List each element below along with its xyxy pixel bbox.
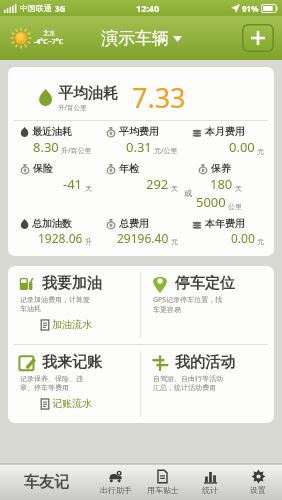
staticText: 91% xyxy=(242,3,259,14)
staticText: 演示车辆 xyxy=(101,28,169,49)
button[interactable]: 记账流水 xyxy=(40,397,92,410)
staticText: 停车定位 xyxy=(175,274,235,293)
staticText: 29196.40 xyxy=(117,230,169,246)
staticText: 我要加油 xyxy=(42,274,102,293)
button[interactable]: 出行助手 xyxy=(92,464,139,500)
staticText: 总费用 xyxy=(119,217,149,230)
staticText: -41 xyxy=(63,175,83,193)
staticText: 元 xyxy=(257,147,264,156)
staticText: 总加油数 xyxy=(32,217,72,230)
staticText: 12:40 xyxy=(136,2,160,14)
staticText: 加油流水 xyxy=(52,318,92,331)
staticText: 3G xyxy=(55,3,66,14)
staticText: 0.00 xyxy=(229,138,255,156)
staticText: 本年费用 xyxy=(205,217,245,230)
staticText: 天 xyxy=(85,184,92,193)
button[interactable]: 加油流水 xyxy=(40,318,92,331)
staticText: 保险 xyxy=(33,162,53,175)
staticText: 8.30 xyxy=(33,138,59,156)
staticText: 升/百公里 xyxy=(58,103,87,112)
staticText: 统计 xyxy=(202,485,218,495)
staticText: 平均费用 xyxy=(119,125,159,138)
staticText: 0.31 xyxy=(126,138,152,156)
staticText: 平均油耗 xyxy=(58,84,118,103)
staticText: 年检 xyxy=(119,162,139,175)
button[interactable]: Weather 北京 xyxy=(8,25,66,51)
staticText: 用车贴士 xyxy=(147,485,179,495)
staticText: 180 xyxy=(210,175,233,193)
button[interactable]: 我的活动 xyxy=(141,345,274,423)
button[interactable]: 我要加油 xyxy=(8,266,140,344)
staticText: 车友记 xyxy=(24,473,69,492)
button[interactable]: 演示车辆 xyxy=(95,24,188,53)
staticText: 1928.06 xyxy=(38,230,83,246)
staticText: GPS记录停车位置，找 车更容易 xyxy=(153,295,223,315)
staticText: 升/百公里 xyxy=(61,146,92,156)
button[interactable]: Add vehicle xyxy=(242,24,274,52)
staticText: 或 xyxy=(184,188,192,198)
staticText: 元 xyxy=(257,237,264,246)
staticText: 最近油耗 xyxy=(32,125,72,138)
staticText: 本月费用 xyxy=(205,125,245,138)
button[interactable]: 用车贴士 xyxy=(139,464,186,500)
staticText: 公里 xyxy=(228,202,242,211)
staticText: 7.33 xyxy=(132,79,186,116)
staticText: 天 xyxy=(235,184,242,193)
staticText: 保养 xyxy=(211,162,231,175)
staticText: 292 xyxy=(146,175,169,193)
staticText: 我来记账 xyxy=(42,353,102,372)
staticText: 出行助手 xyxy=(100,485,132,495)
button[interactable]: 设置 xyxy=(234,464,282,500)
button[interactable]: 停车定位 xyxy=(141,266,274,344)
staticText: 中国联通 xyxy=(20,3,52,13)
staticText: 我的活动 xyxy=(175,353,235,372)
staticText: 元/公里 xyxy=(154,146,178,156)
staticText: 5000 xyxy=(196,193,226,211)
button[interactable]: 我来记账 xyxy=(8,345,140,423)
staticText: 天 xyxy=(171,184,178,193)
button[interactable]: 车友记 xyxy=(0,464,92,500)
staticText: 记录加油费用，计算爱 车油耗 xyxy=(20,295,90,314)
staticText: 记账流水 xyxy=(52,397,92,410)
staticText: 记录保养、保险、违 章、停车等费用 xyxy=(20,374,83,393)
staticText: 0.00 xyxy=(231,230,255,246)
staticText: 设置 xyxy=(250,485,266,495)
button[interactable]: 统计 xyxy=(186,464,234,500)
staticText: 自驾游、自由行等活动 汇总，统计活动费用 xyxy=(153,374,223,393)
staticText: 升 xyxy=(85,237,92,246)
staticText: 元 xyxy=(171,237,178,246)
staticText: 北京 xyxy=(43,29,55,37)
staticText: -4°C~7°C xyxy=(34,37,64,47)
